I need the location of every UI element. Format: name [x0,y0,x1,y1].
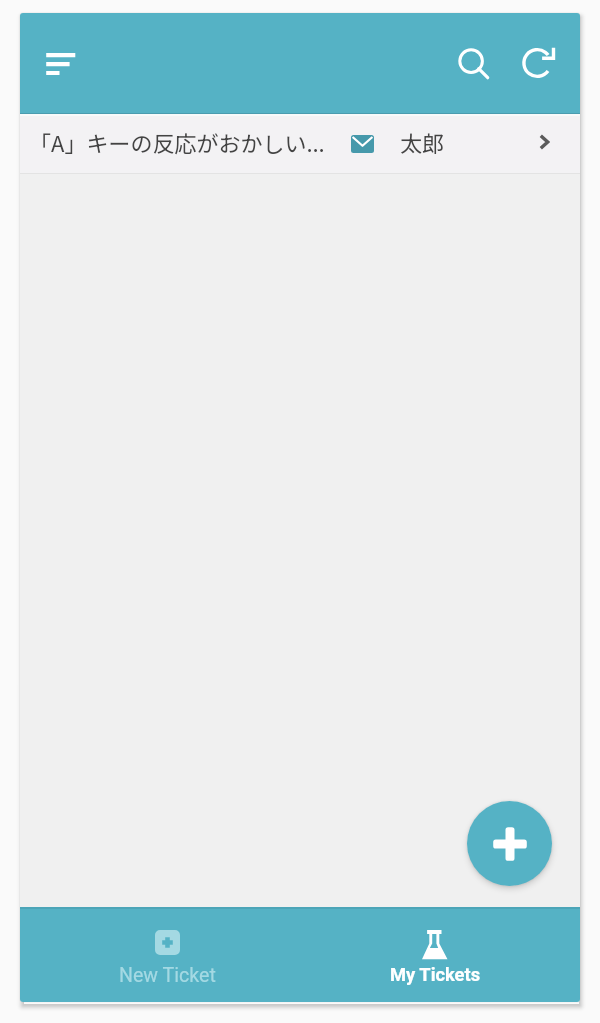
button[interactable]: Add new ticket [467,801,552,886]
button[interactable]: Refresh [511,35,567,91]
staticText: New Ticket [119,964,216,987]
button[interactable]: Menu [20,27,92,99]
button[interactable]: Search [445,35,501,91]
button[interactable]: New Ticket [33,909,301,1002]
button[interactable]: My Tickets [301,909,569,1002]
staticText: My Tickets [390,964,481,985]
staticText: 「A」キーの反応がおかしい... [29,126,325,158]
button[interactable]: 「A」キーの反応がおかしい... [20,116,580,173]
staticText: 太郎 [400,126,445,158]
